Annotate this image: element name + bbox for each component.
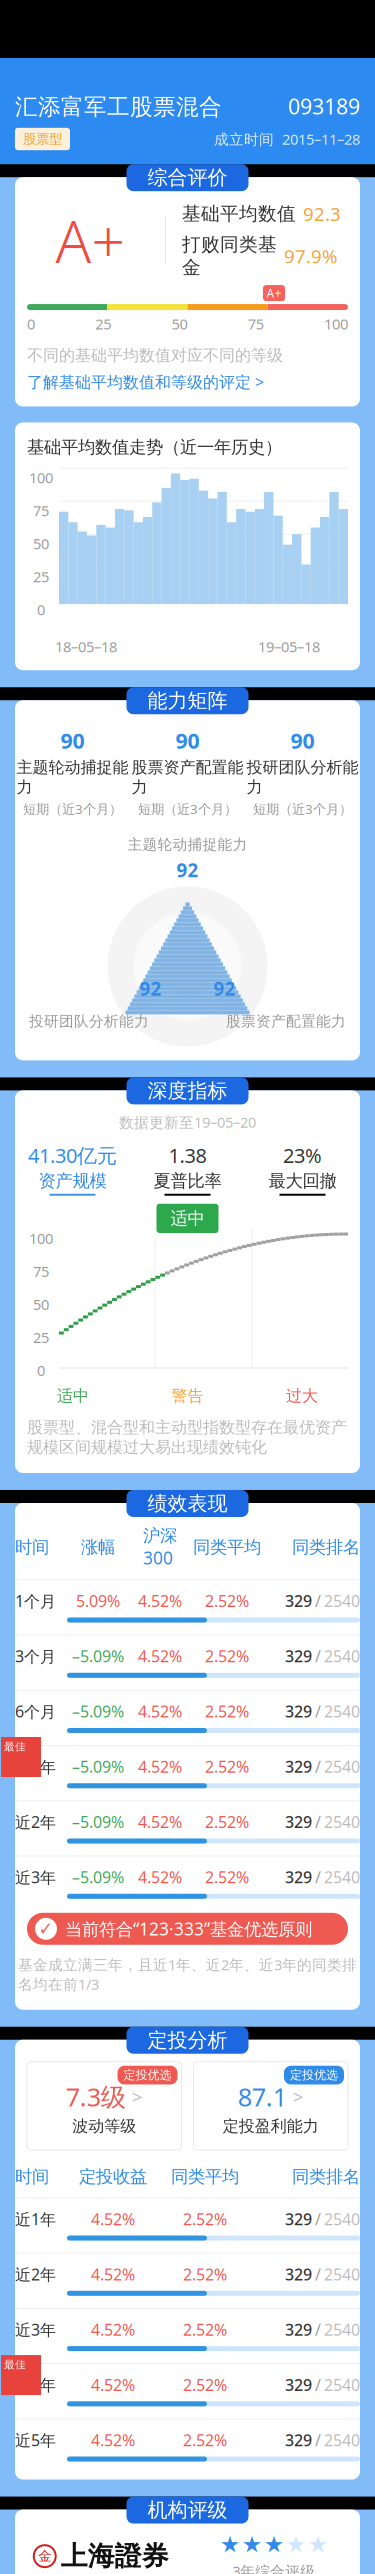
staticText: 100: [29, 468, 53, 487]
staticText: 打败同类基金: [182, 233, 277, 279]
staticText: 资产规模: [38, 1170, 106, 1192]
staticText: 投研团队分析能力: [29, 1012, 149, 1030]
staticText: 4.52%: [91, 2374, 135, 2395]
staticText: 不同的基础平均数值对应不同的等级: [27, 346, 283, 365]
staticText: 近4年: [15, 2374, 56, 2395]
staticText: 股票资产配置能力: [226, 1012, 346, 1030]
staticText: 1.38: [168, 1142, 206, 1168]
staticText: 同类排名: [292, 2166, 360, 2187]
staticText: 0: [37, 600, 45, 619]
staticText: >: [293, 2084, 304, 2109]
staticText: 4.52%: [138, 1811, 182, 1832]
staticText: 2.52%: [205, 1645, 249, 1667]
staticText: 92.3: [303, 201, 341, 226]
staticText: 短期（近3个月）: [253, 800, 352, 818]
staticText: 4.52%: [138, 1590, 182, 1611]
staticText: /: [315, 2374, 321, 2395]
staticText: 7.3级: [66, 2080, 126, 2113]
staticText: 329: [285, 1756, 312, 1777]
staticText: 定投优选: [290, 2068, 338, 2082]
staticText: 2.52%: [205, 1756, 249, 1777]
staticText: 2.52%: [205, 1701, 249, 1722]
staticText: 92: [213, 976, 235, 1001]
staticText: 了解基础平均数值和等级的评定 >: [27, 371, 264, 392]
staticText: 基础平均数值: [182, 202, 296, 225]
staticText: ★: [264, 2532, 284, 2557]
staticText: 90: [290, 726, 314, 754]
staticText: 100: [324, 314, 348, 334]
staticText: 绩效表现: [147, 1491, 227, 1516]
staticText: >: [132, 2084, 143, 2109]
staticText: 2.52%: [205, 1590, 249, 1611]
staticText: 2540: [324, 2319, 360, 2340]
staticText: 329: [285, 1645, 312, 1667]
staticText: 50: [33, 1294, 49, 1314]
staticText: 2540: [324, 1645, 360, 1667]
staticText: 329: [285, 2208, 312, 2229]
staticText: –5.09%: [72, 1756, 124, 1777]
staticText: 329: [285, 2429, 312, 2450]
staticText: 2540: [324, 2374, 360, 2395]
staticText: 定投优选: [123, 2068, 171, 2082]
staticText: 近2年: [15, 2264, 56, 2285]
staticText: 沪深300: [143, 1525, 177, 1569]
staticText: 329: [285, 1590, 312, 1611]
staticText: 2540: [324, 1590, 360, 1611]
staticText: 近3年: [15, 2319, 56, 2340]
staticText: 4.52%: [138, 1645, 182, 1667]
button[interactable]: 87.1: [193, 2062, 348, 2150]
staticText: 2540: [324, 1866, 360, 1888]
staticText: 41.30亿元: [28, 1142, 117, 1168]
staticText: 最大回撤: [268, 1170, 336, 1192]
staticText: 主题轮动捕捉能力: [127, 836, 247, 854]
staticText: /: [315, 1811, 321, 1832]
staticText: 适中: [57, 1386, 89, 1406]
staticText: 6个月: [15, 1701, 56, 1722]
staticText: 定投盈利能力: [223, 2116, 319, 2136]
staticText: 基础平均数值走势（近一年历史）: [27, 436, 282, 458]
staticText: /: [315, 2429, 321, 2450]
staticText: 2540: [324, 2208, 360, 2229]
staticText: 5.09%: [76, 1590, 120, 1611]
staticText: 机构评级: [147, 2498, 227, 2522]
staticText: –5.09%: [72, 1811, 124, 1832]
staticText: 数据更新至19–05–20: [119, 1112, 256, 1132]
staticText: 329: [285, 1701, 312, 1722]
staticText: 定投收益: [79, 2166, 147, 2187]
staticText: 波动等级: [72, 2116, 136, 2136]
staticText: 90: [175, 726, 199, 754]
staticText: 90: [60, 726, 84, 754]
staticText: 329: [285, 1811, 312, 1832]
staticText: 329: [285, 2264, 312, 2285]
staticText: 同类平均: [193, 1536, 261, 1558]
staticText: 329: [285, 2374, 312, 2395]
staticText: 近2年: [15, 1811, 56, 1832]
staticText: 50: [171, 314, 187, 334]
staticText: 329: [285, 2319, 312, 2340]
staticText: /: [315, 1701, 321, 1722]
staticText: 4.52%: [91, 2319, 135, 2340]
staticText: 1个月: [15, 1590, 56, 1611]
staticText: 3个月: [15, 1645, 56, 1667]
staticText: 近3年: [15, 1866, 56, 1888]
button[interactable]: 7.3级: [27, 2062, 181, 2150]
staticText: 4.52%: [138, 1756, 182, 1777]
staticText: 主题轮动捕捉能力: [16, 758, 128, 797]
staticText: 短期（近3个月）: [138, 800, 237, 818]
staticText: 92: [139, 976, 161, 1001]
staticText: 近5年: [15, 2429, 56, 2450]
staticText: 4.52%: [91, 2429, 135, 2450]
staticText: /: [315, 1866, 321, 1888]
staticText: 金: [38, 2548, 51, 2564]
staticText: 过大: [286, 1386, 318, 1406]
staticText: 3年综合评级: [232, 2561, 315, 2574]
button[interactable]: 了解基础平均数值和等级的评定 >: [27, 371, 264, 392]
staticText: /: [315, 2264, 321, 2285]
staticText: 25: [33, 567, 49, 586]
staticText: 股票资产配置能力: [131, 758, 243, 797]
staticText: 近1年: [15, 2208, 56, 2229]
staticText: 23%: [283, 1142, 322, 1168]
staticText: ★: [242, 2532, 262, 2557]
staticText: A+: [266, 285, 281, 301]
staticText: 上海證券: [61, 2540, 169, 2573]
